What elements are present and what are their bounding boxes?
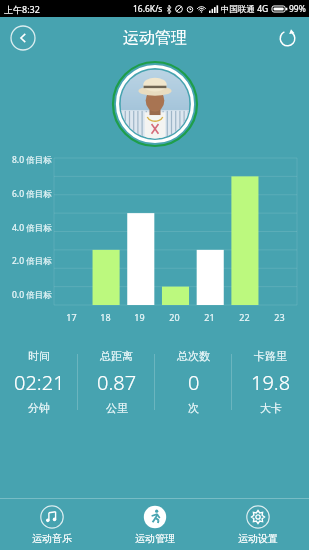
staticText: 0 bbox=[188, 369, 200, 396]
button[interactable]: 运动音乐 bbox=[0, 499, 103, 550]
staticText: 运动管理 bbox=[123, 28, 187, 48]
button[interactable]: 卡路里 bbox=[232, 343, 309, 421]
staticText: 总距离 bbox=[100, 349, 133, 363]
staticText: 22 bbox=[239, 311, 250, 323]
staticText: 运动管理 bbox=[135, 532, 175, 545]
staticText: 23 bbox=[274, 311, 285, 323]
button[interactable]: Refresh bbox=[275, 26, 299, 50]
staticText: 18 bbox=[100, 311, 111, 323]
staticText: 公里 bbox=[106, 401, 128, 415]
staticText: 0.0 倍目标 bbox=[12, 289, 52, 301]
staticText: 上午8:32 bbox=[4, 3, 40, 15]
button[interactable]: 时间 bbox=[0, 343, 78, 421]
staticText: 21 bbox=[204, 311, 215, 323]
staticText: 卡路里 bbox=[254, 349, 287, 363]
staticText: 总次数 bbox=[177, 349, 210, 363]
button[interactable]: 总次数 bbox=[155, 343, 232, 421]
staticText: 20 bbox=[169, 311, 180, 323]
button[interactable]: 总距离 bbox=[78, 343, 155, 421]
staticText: 分钟 bbox=[28, 401, 50, 415]
staticText: 运动设置 bbox=[238, 532, 278, 545]
staticText: 4.0 倍目标 bbox=[12, 222, 52, 234]
staticText: 02:21 bbox=[14, 369, 65, 396]
staticText: 时间 bbox=[28, 349, 50, 363]
staticText: 6.0 倍目标 bbox=[12, 188, 52, 200]
button[interactable]: 运动设置 bbox=[206, 499, 309, 550]
staticText: 16.6K/s bbox=[133, 3, 163, 15]
staticText: 大卡 bbox=[260, 401, 282, 415]
staticText: 19.8 bbox=[251, 369, 291, 396]
staticText: 2.0 倍目标 bbox=[12, 255, 52, 267]
staticText: 17 bbox=[66, 311, 77, 323]
button[interactable]: Profile photo bbox=[112, 61, 198, 147]
staticText: 99% bbox=[289, 3, 306, 15]
staticText: 中国联通 4G bbox=[221, 3, 269, 15]
button[interactable]: Back bbox=[10, 25, 36, 51]
staticText: 运动音乐 bbox=[32, 532, 72, 545]
staticText: 0.87 bbox=[97, 369, 137, 396]
staticText: 次 bbox=[188, 401, 199, 415]
button[interactable]: 运动管理 bbox=[103, 499, 206, 550]
staticText: 19 bbox=[134, 311, 145, 323]
staticText: 8.0 倍目标 bbox=[12, 154, 52, 166]
